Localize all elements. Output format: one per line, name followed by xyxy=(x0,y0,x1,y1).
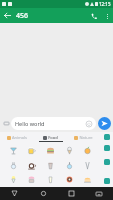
staticText: Nature xyxy=(79,135,93,140)
button[interactable]: Emoji 13 xyxy=(62,172,76,186)
button[interactable]: Back xyxy=(0,187,29,200)
button[interactable]: Switch keyboard xyxy=(85,187,113,200)
button[interactable]: Emoji 14 xyxy=(80,172,94,186)
button[interactable]: Emoji 6 xyxy=(24,158,38,172)
button[interactable]: Emoji 2 xyxy=(43,143,57,157)
button[interactable]: More options xyxy=(101,10,113,22)
button[interactable]: Emoji 0 xyxy=(6,143,20,157)
staticText: Animals xyxy=(12,135,27,140)
button[interactable]: Emoji 3 xyxy=(62,143,76,157)
button[interactable]: Animals xyxy=(0,132,34,142)
button[interactable]: Emoji 4 xyxy=(80,143,94,157)
button[interactable]: Search emoji xyxy=(100,132,113,142)
button[interactable]: Send xyxy=(98,117,111,130)
button[interactable]: Food xyxy=(34,132,67,142)
button[interactable]: Emoji 7 xyxy=(43,158,57,172)
button[interactable]: Emoji 12 xyxy=(43,172,57,186)
button[interactable]: Enter xyxy=(102,176,112,186)
button[interactable]: Emoji 1 xyxy=(24,143,38,157)
other: Emoji xyxy=(86,121,92,127)
staticText: Hello world xyxy=(15,120,86,127)
button[interactable]: Emoji 11 xyxy=(24,172,38,186)
button[interactable]: Emoji 10 xyxy=(6,172,20,186)
button[interactable]: Emoji 5 xyxy=(6,158,20,172)
button[interactable]: Recent apps xyxy=(57,187,85,200)
staticText: Food xyxy=(48,135,58,140)
button[interactable]: Backspace xyxy=(102,143,112,153)
button[interactable]: Call xyxy=(87,9,101,23)
button[interactable]: Emoji 8 xyxy=(62,158,76,172)
button[interactable]: Back xyxy=(0,8,15,23)
button[interactable]: Home xyxy=(29,187,57,200)
button[interactable]: Emoji 9 xyxy=(80,158,94,172)
button[interactable]: Nature xyxy=(67,132,100,142)
staticText: 456 xyxy=(16,11,29,21)
button[interactable]: Hello world xyxy=(11,117,96,130)
button[interactable]: Recent emoji xyxy=(102,157,112,167)
button[interactable]: Attach xyxy=(2,119,11,128)
staticText: 12:15 xyxy=(99,1,111,7)
